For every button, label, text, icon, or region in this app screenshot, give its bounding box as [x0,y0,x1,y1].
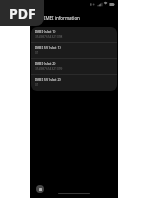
staticText: 354987654321098 [35,35,63,39]
staticText: 01 [35,83,39,87]
staticText: IMEI SV (slot 2) [35,77,61,82]
staticText: 01 [35,51,39,55]
staticText: PDF [9,4,36,23]
staticText: IMEI (slot 1) [35,29,56,34]
staticText: IMEI SV (slot 1) [35,45,61,50]
button[interactable]: Screen record [36,185,44,193]
button[interactable]: IMEI SV (slot 1) [31,43,117,59]
staticText: IMEI information [44,15,80,21]
button[interactable]: IMEI SV (slot 2) [31,75,117,91]
button[interactable]: IMEI (slot 1) [31,27,117,43]
button[interactable]: IMEI (slot 2) [31,59,117,75]
staticText: 354987654321099 [35,67,63,71]
staticText: IMEI (slot 2) [35,61,56,66]
